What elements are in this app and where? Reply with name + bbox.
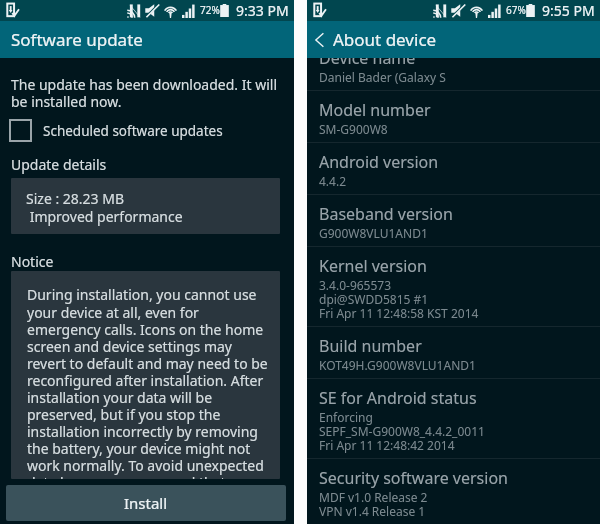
staticText: Baseband version: [319, 203, 453, 225]
staticText: G900W8VLU1AND1: [319, 225, 428, 241]
button[interactable]: Baseband version: [307, 195, 600, 246]
button[interactable]: Back: [307, 28, 441, 51]
staticText: MDF v1.0 Release 2 VPN v1.4 Release 1: [319, 489, 428, 519]
staticText: Daniel Bader (Galaxy S: [319, 69, 446, 85]
staticText: Install: [124, 493, 168, 513]
staticText: Security software version: [319, 467, 508, 489]
staticText: Notice: [11, 252, 54, 271]
staticText: Size : 28.23 MB Improved performance: [26, 189, 183, 226]
staticText: 9:33 PM: [236, 1, 289, 20]
staticText: 3.4.0-965573 dpi@SWDD5815 #1 Fri Apr 11 …: [319, 277, 479, 321]
staticText: 72%: [200, 3, 220, 17]
button[interactable]: Model number: [307, 91, 600, 142]
staticText: Kernel version: [319, 255, 427, 277]
staticText: 4.4.2: [319, 173, 347, 189]
staticText: About device: [333, 28, 437, 51]
staticText: SE for Android status: [319, 387, 477, 409]
staticText: KOT49H.G900W8VLU1AND1: [319, 357, 476, 373]
staticText: Update details: [11, 155, 107, 174]
button[interactable]: SE for Android status: [307, 379, 600, 458]
button[interactable]: Kernel version: [307, 247, 600, 326]
staticText: Android version: [319, 151, 439, 173]
button[interactable]: Security software version: [307, 459, 600, 524]
staticText: 67%: [506, 3, 526, 17]
staticText: Scheduled software updates: [43, 122, 223, 140]
staticText: Device name: [319, 47, 416, 69]
staticText: Enforcing SEPF_SM-G900W8_4.4.2_0011 Fri …: [319, 409, 485, 453]
button[interactable]: Build number: [307, 327, 600, 378]
staticText: Software update: [11, 28, 143, 51]
button[interactable]: Install: [6, 485, 286, 521]
button[interactable]: Device name: [307, 39, 600, 90]
staticText: SM-G900W8: [319, 121, 388, 137]
button[interactable]: Android version: [307, 143, 600, 194]
staticText: Model number: [319, 99, 431, 121]
button[interactable]: Scheduled software updates: [0, 119, 294, 142]
staticText: During installation, you cannot use your…: [27, 285, 272, 479]
staticText: Build number: [319, 335, 422, 357]
staticText: The update has been downloaded. It will …: [11, 75, 280, 111]
staticText: 9:55 PM: [542, 1, 595, 20]
